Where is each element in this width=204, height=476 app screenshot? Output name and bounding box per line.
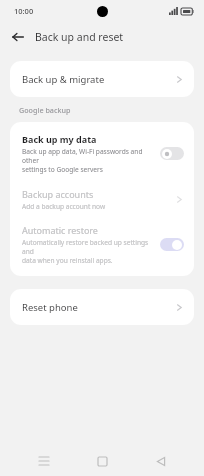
button[interactable]: Reset phone [10, 289, 194, 325]
staticText: Automatic restore [22, 224, 98, 236]
button[interactable]: Toggle on [160, 238, 184, 251]
button[interactable]: Back [146, 446, 176, 476]
button[interactable]: Back up my data [10, 129, 194, 178]
staticText: Back up and reset [35, 30, 124, 44]
button[interactable]: Automatic restore [10, 222, 194, 267]
button[interactable]: Toggle off [160, 147, 184, 160]
staticText: Reset phone [22, 301, 176, 314]
staticText: Back up my data [22, 133, 97, 145]
staticText: Back up & migrate [22, 73, 176, 86]
staticText: Back up app data, Wi-Fi passwords and ot… [22, 147, 154, 174]
staticText: Google backup [19, 105, 71, 115]
button[interactable]: Back [7, 26, 29, 48]
button[interactable]: Home [87, 446, 117, 476]
staticText: Backup accounts [22, 188, 94, 200]
staticText: 10:00 [14, 6, 34, 16]
button[interactable]: Backup accounts [10, 186, 194, 213]
button[interactable]: Recent apps [29, 446, 59, 476]
staticText: Automatically restore backed up settings… [22, 238, 154, 265]
button[interactable]: Back up & migrate [10, 61, 194, 97]
staticText: Add a backup account now [22, 202, 106, 211]
